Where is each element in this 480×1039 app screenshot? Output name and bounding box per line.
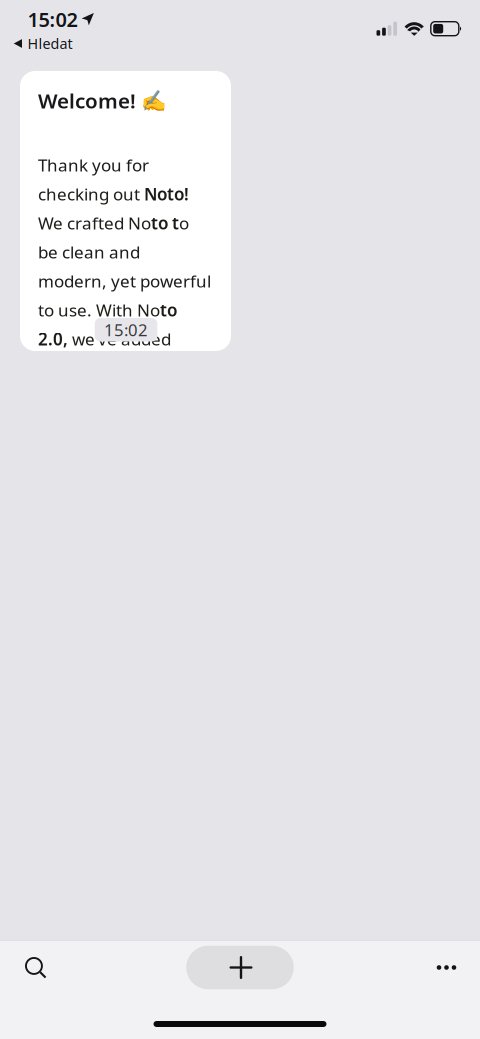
staticText: 2.0, we've added — [38, 328, 171, 350]
staticText: be clean and — [38, 240, 140, 264]
staticText: Thank you for — [38, 153, 149, 177]
staticText: Welcome! ✍️ — [38, 86, 167, 114]
staticText: 15:02 — [104, 318, 148, 341]
staticText: We crafted Noto to — [38, 212, 189, 234]
staticText: Hledat — [27, 34, 72, 53]
staticText: modern, yet powerful — [38, 269, 211, 293]
staticText: to use. With Noto — [38, 299, 177, 321]
button[interactable]: Welcome! note — [20, 71, 231, 351]
staticText: 15:02 — [27, 5, 77, 33]
button[interactable]: New note — [186, 946, 294, 989]
staticText: checking out Noto! — [38, 183, 189, 205]
button[interactable]: More — [415, 945, 476, 989]
button[interactable]: Search — [4, 945, 65, 989]
button[interactable]: Back to Hledat — [0, 33, 82, 54]
